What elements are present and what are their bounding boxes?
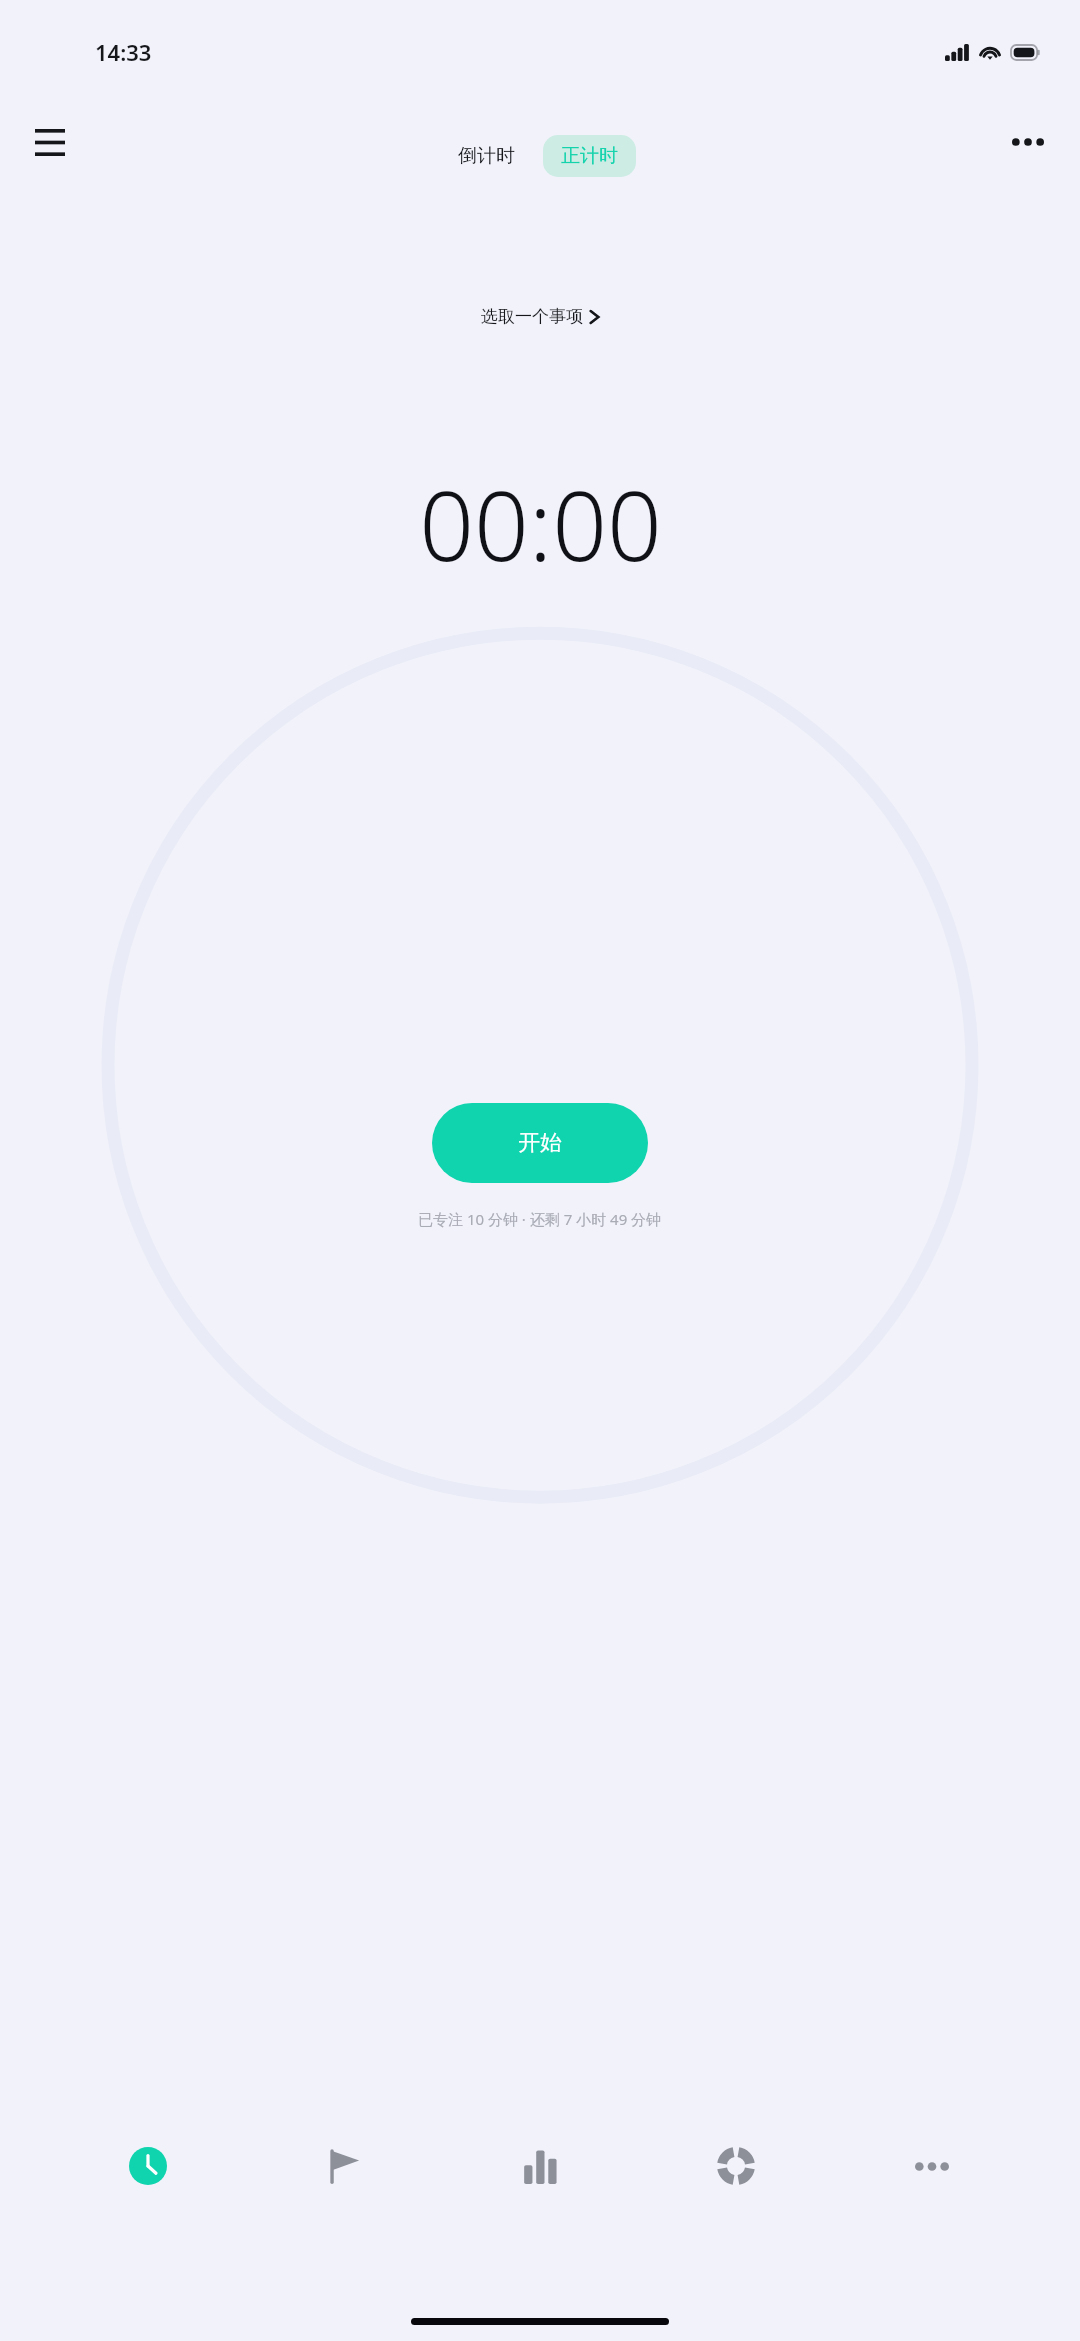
button[interactable]: Statistics bbox=[492, 2129, 588, 2203]
staticText: 开始 bbox=[518, 1129, 562, 1157]
button[interactable]: 开始 bbox=[432, 1103, 648, 1183]
button[interactable]: Timer bbox=[100, 2129, 196, 2203]
staticText: 14:33 bbox=[95, 37, 152, 67]
staticText: 倒计时 bbox=[458, 144, 515, 168]
staticText: 已专注 10 分钟 · 还剩 7 小时 49 分钟 bbox=[418, 1209, 662, 1229]
staticText: 正计时 bbox=[561, 144, 618, 168]
staticText: 00:00 bbox=[419, 458, 662, 589]
button[interactable]: 选取一个事项 bbox=[471, 300, 610, 333]
button[interactable]: More options bbox=[1000, 114, 1056, 170]
button[interactable]: Focus bbox=[296, 2129, 392, 2203]
button[interactable]: More bbox=[884, 2129, 980, 2203]
button[interactable]: 倒计时 bbox=[444, 135, 529, 177]
button[interactable]: Report bbox=[688, 2129, 784, 2203]
staticText: 选取一个事项 bbox=[481, 306, 583, 327]
button[interactable]: Menu bbox=[22, 114, 78, 170]
button[interactable]: 正计时 bbox=[543, 135, 636, 177]
